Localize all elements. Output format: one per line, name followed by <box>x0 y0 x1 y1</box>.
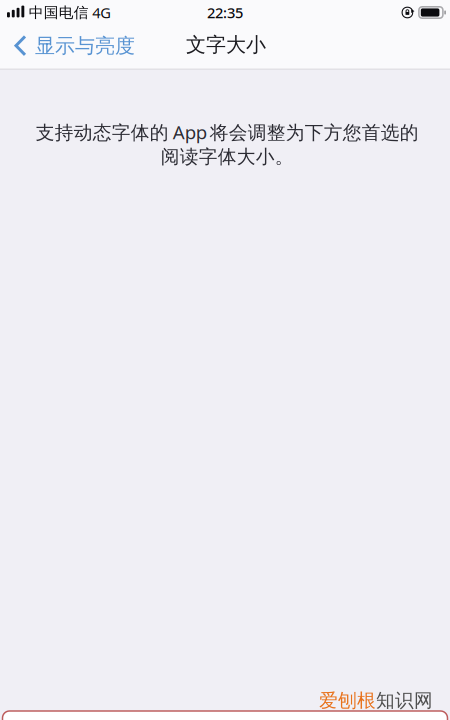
staticText: 知识网 <box>376 689 433 712</box>
staticText: 文字大小 <box>186 32 266 57</box>
staticText: 22:35 <box>207 3 243 22</box>
button[interactable]: 显示与亮度 <box>0 26 143 68</box>
staticText: 支持动态字体的 App 将会调整为下方您首选的阅读字体大小。 <box>35 119 418 168</box>
staticText: 爱刨根 <box>319 689 376 712</box>
staticText: 显示与亮度 <box>35 33 135 58</box>
staticText: 4G <box>92 3 111 22</box>
staticText: 中国电信 <box>29 3 89 21</box>
